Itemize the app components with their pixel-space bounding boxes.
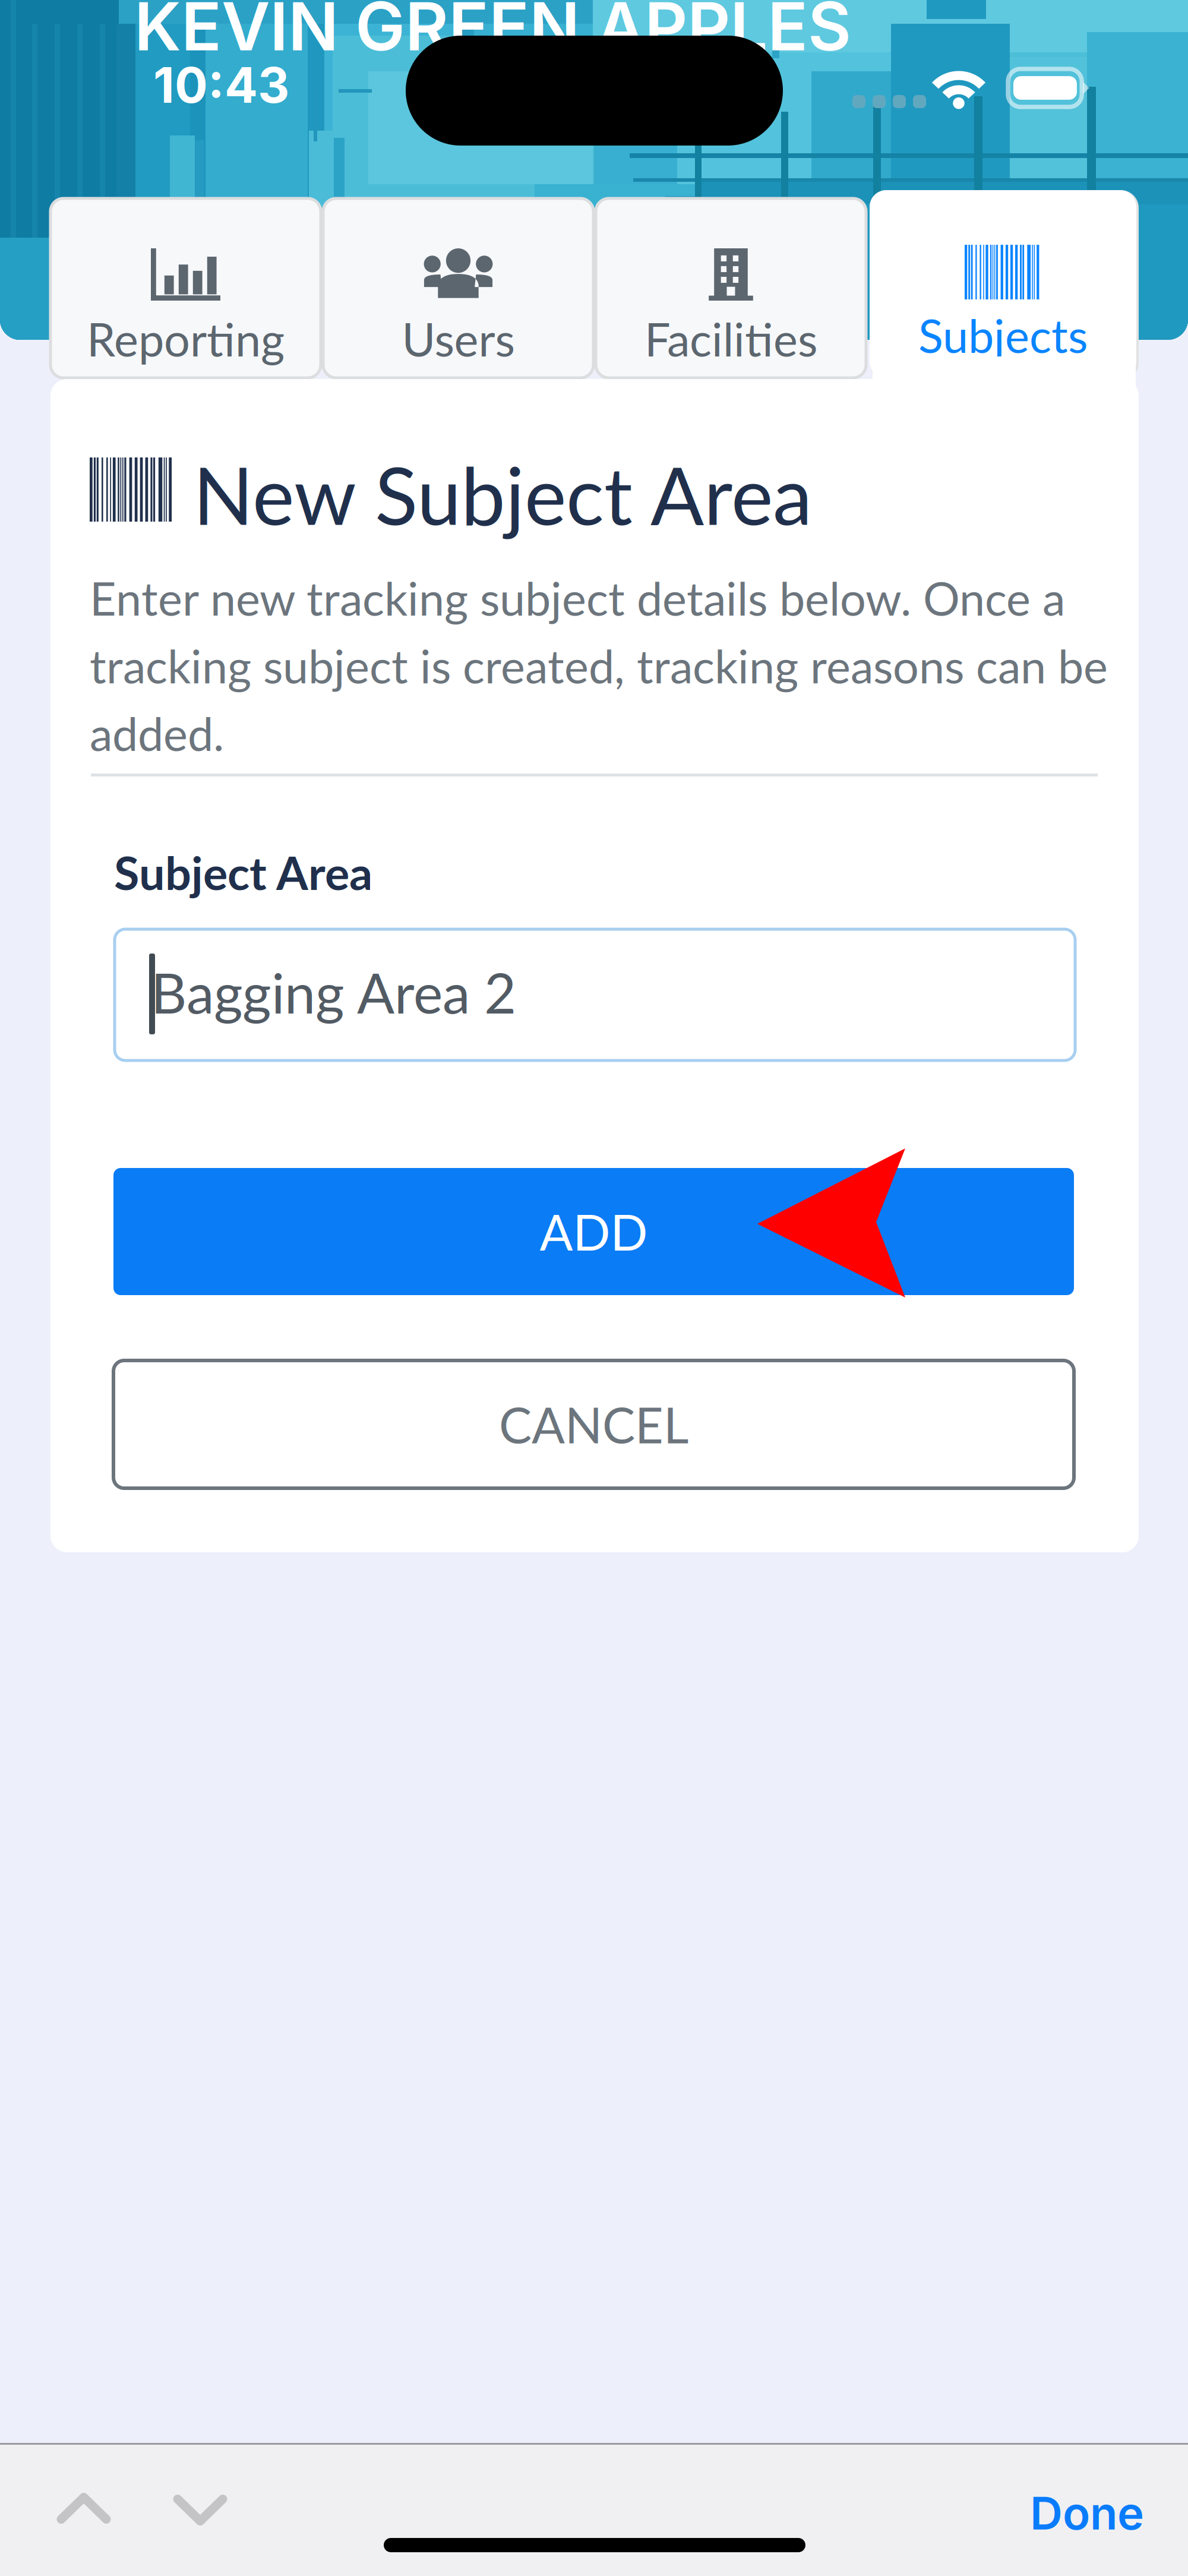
staticText: Reporting [87, 311, 285, 366]
staticText: Subjects [918, 308, 1088, 363]
staticText: Bagging Area 2 [151, 959, 516, 1025]
staticText: CANCEL [499, 1395, 688, 1454]
button[interactable]: Next field [147, 2468, 254, 2552]
staticText: Subject Area [114, 845, 372, 900]
button[interactable]: Users [323, 198, 593, 378]
button[interactable]: Reporting [50, 198, 321, 378]
button[interactable]: Previous field [30, 2467, 137, 2550]
staticText: Enter new tracking subject details below… [90, 570, 1108, 761]
button[interactable]: Subjects [870, 190, 1139, 380]
button[interactable]: CANCEL [113, 1360, 1074, 1488]
staticText: KEVIN GREEN APPLES [134, 0, 851, 66]
staticText: Facilities [644, 311, 817, 366]
staticText: Users [402, 311, 515, 366]
staticText: Done [1030, 2486, 1144, 2540]
staticText: ADD [540, 1202, 648, 1261]
staticText: New Subject Area [193, 447, 812, 542]
staticText: 10:43 [153, 55, 289, 115]
button[interactable]: Facilities [596, 198, 866, 378]
button[interactable]: Done [1013, 2479, 1161, 2547]
button[interactable]: ADD [113, 1168, 1074, 1295]
